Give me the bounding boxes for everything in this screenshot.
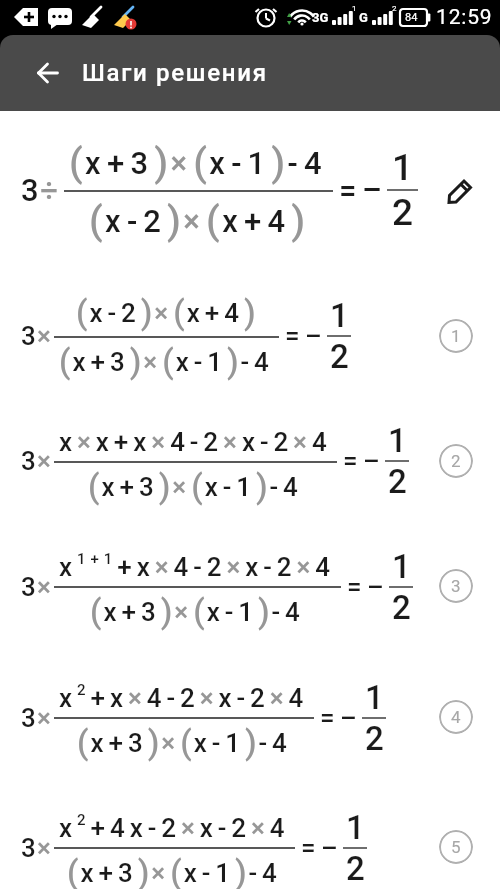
button[interactable]: 3 (439, 569, 473, 603)
staticText: 3 (451, 576, 461, 596)
staticText: 1 (388, 421, 407, 460)
staticText: x2+x×4-2×x-2×4 (59, 681, 309, 713)
button[interactable]: 3× (0, 531, 500, 659)
staticText: (x+3)×(x-1)-4 (90, 592, 305, 631)
button[interactable]: 3× (0, 659, 500, 787)
staticText: 84 (405, 11, 418, 24)
button[interactable]: 5 (439, 830, 473, 864)
staticText: 3× (21, 446, 53, 476)
staticText: (x+3)×(x-1)-4 (88, 467, 303, 506)
staticText: 2 (365, 719, 384, 758)
staticText: 3÷ (21, 172, 60, 208)
button[interactable] (18, 43, 78, 103)
button[interactable]: 3× (0, 403, 500, 531)
staticText: = (320, 703, 335, 733)
staticText: 3× (21, 572, 53, 602)
staticText: – (363, 446, 380, 476)
staticText: 1 (330, 296, 349, 335)
staticText: x2+4x-2×x-2×4 (59, 811, 290, 843)
staticText: 1 (392, 547, 411, 586)
staticText: (x+3)×(x-1)-4 (67, 853, 282, 889)
staticText: G (359, 10, 368, 25)
staticText: (x+3)×(x-1)-4 (59, 342, 274, 381)
staticText: 2 (346, 849, 365, 888)
staticText: 3G (312, 10, 329, 25)
button[interactable]: 3× (0, 275, 500, 403)
staticText: – (362, 172, 382, 208)
staticText: – (340, 703, 357, 733)
staticText: 1 (352, 4, 357, 13)
staticText: 3× (21, 703, 53, 733)
staticText: 2 (392, 4, 397, 13)
staticText: – (305, 321, 322, 351)
staticText: 3× (21, 321, 53, 351)
button[interactable]: 1 (439, 319, 473, 353)
staticText: = (347, 572, 362, 602)
button[interactable] (445, 174, 477, 206)
staticText: 1 (365, 678, 384, 717)
button[interactable]: 4 (439, 700, 473, 734)
staticText: x×x+x×4-2×x-2×4 (59, 427, 332, 457)
staticText: 2 (392, 588, 411, 627)
staticText: 1 (346, 808, 365, 847)
staticText: – (367, 572, 384, 602)
staticText: (x-2)×(x+4) (76, 293, 258, 332)
staticText: 5 (451, 837, 461, 857)
staticText: = (285, 321, 300, 351)
staticText: Шаги решения (82, 59, 268, 87)
staticText: (x-2)×(x+4) (89, 197, 308, 243)
button[interactable]: 3× (0, 787, 500, 889)
staticText: 4 (451, 707, 461, 727)
staticText: 3× (21, 833, 53, 863)
staticText: 2 (330, 337, 349, 376)
staticText: 1 (451, 326, 461, 346)
staticText: x1+1+x×4-2×x-2×4 (59, 550, 336, 582)
staticText: (x+3)×(x-1)-4 (77, 723, 292, 762)
staticText: (x+3)×(x-1)-4 (69, 139, 328, 185)
staticText: – (321, 833, 338, 863)
button[interactable]: 2 (439, 444, 473, 478)
staticText: = (343, 446, 358, 476)
button[interactable]: 3÷ (0, 111, 500, 275)
staticText: 1 (392, 146, 414, 189)
staticText: = (339, 172, 357, 208)
staticText: 2 (451, 451, 461, 471)
staticText: 12:59 (436, 5, 493, 30)
staticText: 2 (388, 462, 407, 501)
staticText: = (301, 833, 316, 863)
staticText: 2 (392, 191, 414, 234)
